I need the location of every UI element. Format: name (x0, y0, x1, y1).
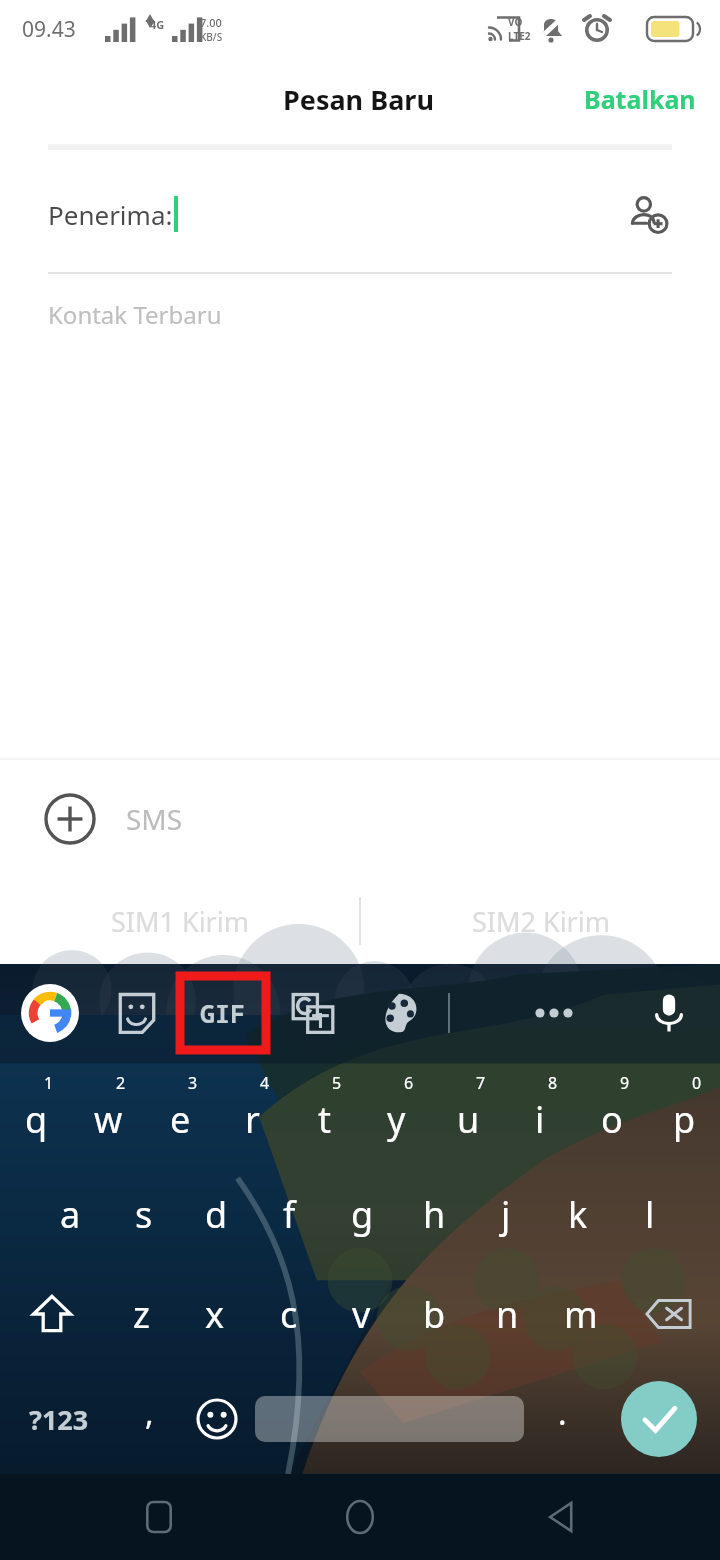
button[interactable]: j (470, 1164, 542, 1264)
button[interactable]: Backspace (617, 1264, 720, 1364)
staticText: i (535, 1095, 545, 1144)
staticText: 1 (44, 1072, 54, 1094)
staticText: VO (508, 15, 523, 29)
staticText: SIM1 Kirim (111, 903, 249, 940)
button[interactable]: Batalkan (560, 68, 720, 130)
staticText: 5 (332, 1072, 342, 1094)
other: Add attachment (40, 789, 100, 849)
button[interactable]: m (544, 1264, 617, 1364)
button[interactable]: c (252, 1264, 325, 1364)
button[interactable]: h (398, 1164, 470, 1264)
staticText: KB/S (200, 30, 223, 44)
staticText: 7 (476, 1072, 486, 1094)
button[interactable]: 1 (0, 1062, 72, 1164)
button[interactable]: 5 (288, 1062, 360, 1164)
staticText: , (145, 1391, 154, 1435)
staticText: w (94, 1095, 123, 1144)
button[interactable]: Enter (621, 1381, 697, 1457)
staticText: m (564, 1290, 598, 1339)
staticText: . (558, 1391, 567, 1435)
button[interactable]: a (34, 1164, 107, 1264)
button[interactable]: . (528, 1364, 597, 1474)
button[interactable]: Add contact (620, 186, 676, 242)
button[interactable]: Add attachment (0, 760, 720, 878)
staticText: 4 (260, 1072, 270, 1094)
staticText: d (205, 1190, 228, 1239)
button[interactable]: Home (318, 1475, 402, 1559)
button[interactable]: ?123 (0, 1364, 117, 1474)
button[interactable]: Penerima: (48, 196, 620, 232)
staticText: u (457, 1095, 480, 1144)
staticText: SIM2 Kirim (472, 903, 610, 940)
staticText: j (501, 1190, 511, 1239)
button[interactable]: Space (255, 1396, 524, 1442)
staticText: ?123 (29, 1401, 89, 1438)
button[interactable]: Stickers (104, 980, 170, 1046)
staticText: 9 (620, 1072, 630, 1094)
staticText: Kontak Terbaru (48, 298, 222, 331)
staticText: g (351, 1190, 374, 1239)
staticText: t (318, 1095, 331, 1144)
staticText: 0 (692, 1072, 702, 1094)
staticText: 6 (404, 1072, 414, 1094)
button[interactable]: Back (519, 1475, 603, 1559)
staticText: b (423, 1290, 446, 1339)
button[interactable]: 9 (576, 1062, 648, 1164)
staticText: s (135, 1190, 153, 1239)
button[interactable]: l (614, 1164, 686, 1264)
staticText: 2 (116, 1072, 126, 1094)
staticText: a (60, 1190, 81, 1239)
button[interactable]: n (471, 1264, 544, 1364)
button[interactable]: x (178, 1264, 252, 1364)
staticText: y (387, 1095, 406, 1144)
staticText: Penerima: (48, 197, 173, 232)
button[interactable]: d (180, 1164, 253, 1264)
button[interactable]: Shift (0, 1264, 104, 1364)
button[interactable]: Themes (366, 980, 432, 1046)
button[interactable]: Google search (14, 977, 86, 1049)
button[interactable]: SIM2 Kirim (361, 878, 720, 964)
staticText: SMS (126, 800, 183, 838)
button[interactable]: z (104, 1264, 178, 1364)
button[interactable]: SIM1 Kirim (0, 878, 359, 964)
staticText: f (283, 1190, 296, 1239)
staticText: v (352, 1290, 371, 1339)
button[interactable]: Voice input (636, 980, 702, 1046)
staticText: 7.00 (200, 15, 222, 30)
button[interactable]: Translate (280, 980, 346, 1046)
button[interactable]: f (253, 1164, 326, 1264)
button[interactable]: 2 (72, 1062, 144, 1164)
button[interactable]: 6 (360, 1062, 432, 1164)
button[interactable]: 3 (144, 1062, 216, 1164)
staticText: 3 (188, 1072, 198, 1094)
staticText: p (673, 1095, 696, 1144)
staticText: h (423, 1190, 446, 1239)
staticText: 09.43 (22, 15, 76, 44)
staticText: x (205, 1290, 225, 1339)
button[interactable]: 4 (216, 1062, 288, 1164)
button[interactable]: More options (521, 980, 587, 1046)
staticText: Batalkan (584, 82, 696, 116)
button[interactable]: g (326, 1164, 398, 1264)
button[interactable]: k (542, 1164, 614, 1264)
staticText: n (496, 1290, 519, 1339)
button[interactable]: , (117, 1364, 182, 1474)
button[interactable]: Emoji (182, 1364, 251, 1474)
button[interactable]: 0 (648, 1062, 720, 1164)
staticText: o (601, 1095, 623, 1144)
button[interactable]: b (398, 1264, 471, 1364)
button[interactable]: 7 (432, 1062, 504, 1164)
button[interactable]: Recent apps (117, 1475, 201, 1559)
staticText: 4G (150, 17, 165, 32)
staticText: c (280, 1290, 298, 1339)
staticText: z (133, 1290, 150, 1339)
staticText: LTE2 (508, 29, 531, 43)
button[interactable]: 8 (504, 1062, 576, 1164)
button[interactable]: s (107, 1164, 180, 1264)
staticText: k (568, 1190, 588, 1239)
button[interactable]: GIF (180, 976, 266, 1050)
staticText: 8 (548, 1072, 558, 1094)
staticText: r (245, 1095, 260, 1144)
staticText: l (645, 1190, 655, 1239)
button[interactable]: v (325, 1264, 398, 1364)
